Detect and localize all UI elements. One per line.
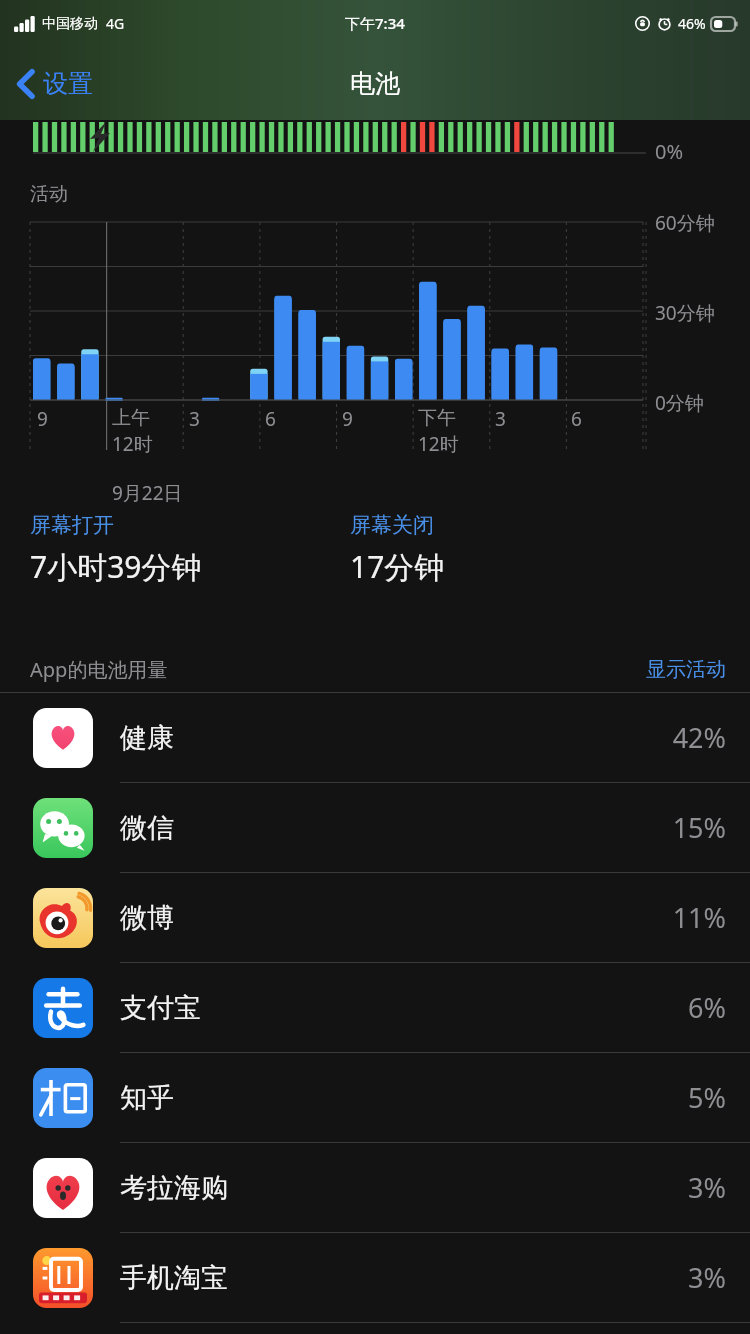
staticText: 60分钟 bbox=[655, 210, 715, 236]
staticText: 6 bbox=[265, 406, 276, 432]
staticText: 4G bbox=[106, 14, 125, 33]
staticText: 微信 bbox=[120, 811, 174, 845]
staticText: 9月22日 bbox=[112, 480, 183, 506]
staticText: 电池 bbox=[350, 68, 400, 99]
staticText: 6 bbox=[571, 406, 582, 432]
staticText: 5% bbox=[688, 1079, 726, 1116]
staticText: 30分钟 bbox=[655, 300, 715, 326]
staticText: 9 bbox=[342, 406, 353, 432]
staticText: 0分钟 bbox=[655, 390, 704, 416]
staticText: 0% bbox=[655, 138, 684, 165]
staticText: 中国移动 bbox=[42, 15, 98, 33]
button[interactable]: 健康 bbox=[0, 693, 750, 782]
staticText: 6% bbox=[688, 989, 726, 1026]
staticText: 7小时39分钟 bbox=[30, 546, 202, 587]
button[interactable]: 微信 bbox=[0, 783, 750, 872]
staticText: 支付宝 bbox=[120, 991, 201, 1025]
button[interactable]: 考拉海购 bbox=[0, 1143, 750, 1232]
staticText: 考拉海购 bbox=[120, 1171, 228, 1205]
button[interactable]: 支付宝 bbox=[0, 963, 750, 1052]
staticText: 11% bbox=[672, 899, 726, 936]
staticText: 15% bbox=[672, 809, 726, 846]
staticText: 健康 bbox=[120, 721, 174, 755]
staticText: 46% bbox=[678, 14, 706, 33]
staticText: 下午7:34 bbox=[345, 13, 405, 33]
staticText: 3% bbox=[688, 1169, 726, 1206]
staticText: 下午 12时 bbox=[418, 406, 459, 457]
staticText: 9 bbox=[37, 406, 48, 432]
staticText: 手机淘宝 bbox=[120, 1261, 228, 1295]
staticText: 17分钟 bbox=[350, 546, 445, 587]
staticText: 3 bbox=[495, 406, 506, 432]
staticText: 3 bbox=[189, 406, 200, 432]
staticText: 活动 bbox=[30, 182, 68, 206]
button[interactable]: 微博 bbox=[0, 873, 750, 962]
button[interactable]: 知乎 bbox=[0, 1053, 750, 1142]
staticText: 微博 bbox=[120, 901, 174, 935]
staticText: 上午 12时 bbox=[112, 406, 153, 457]
staticText: App的电池用量 bbox=[30, 656, 168, 683]
staticText: 知乎 bbox=[120, 1081, 174, 1115]
staticText: 屏幕打开 bbox=[30, 512, 114, 538]
staticText: 3% bbox=[688, 1259, 726, 1296]
button[interactable]: 设置 bbox=[12, 62, 99, 105]
staticText: 设置 bbox=[43, 68, 93, 99]
button[interactable]: 显示活动 bbox=[646, 657, 750, 682]
button[interactable]: 手机淘宝 bbox=[0, 1233, 750, 1322]
staticText: 屏幕关闭 bbox=[350, 512, 434, 538]
staticText: 42% bbox=[672, 719, 726, 756]
